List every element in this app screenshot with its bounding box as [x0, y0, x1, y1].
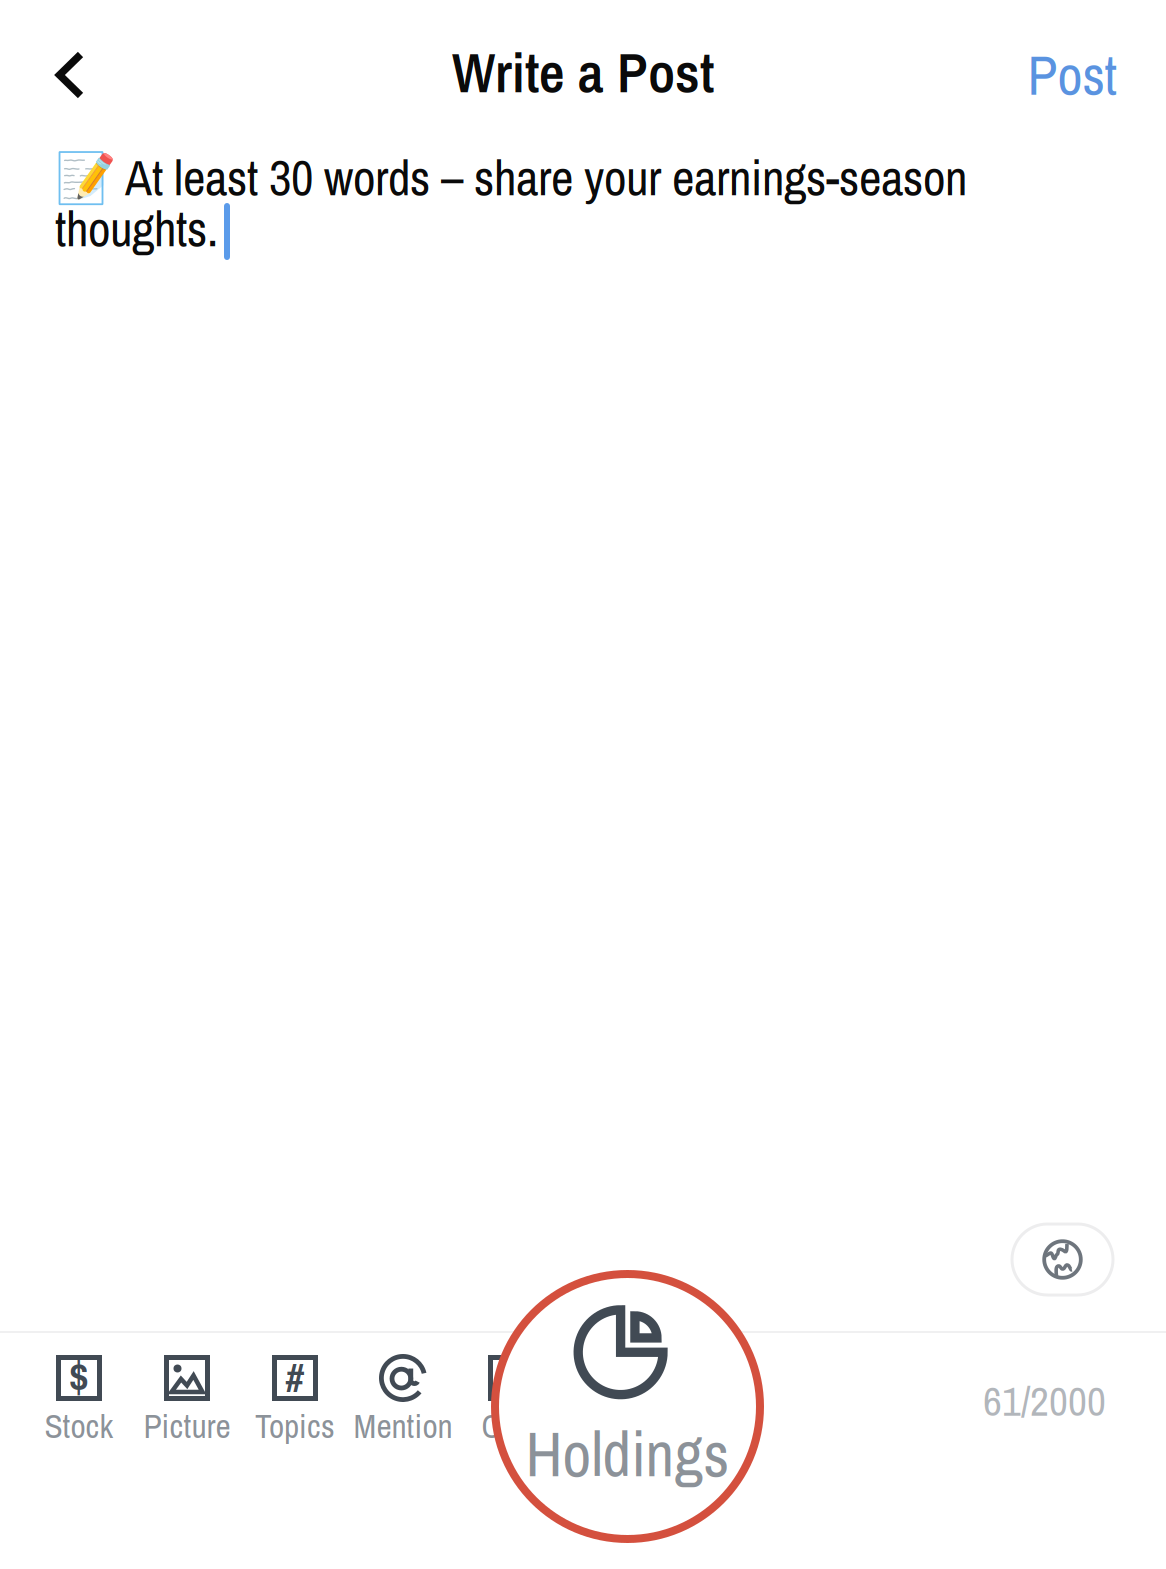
- button[interactable]: Picture: [133, 1355, 241, 1455]
- staticText: Holdings: [525, 1411, 729, 1496]
- button[interactable]: #: [241, 1355, 349, 1455]
- button[interactable]: Mention: [349, 1355, 457, 1455]
- staticText: 61/2000: [983, 1373, 1106, 1429]
- staticText: $: [500, 1346, 521, 1408]
- staticText: Post: [1027, 38, 1116, 112]
- staticText: Write a Post: [452, 34, 714, 110]
- staticText: Stock: [44, 1404, 113, 1448]
- staticText: #: [285, 1349, 304, 1405]
- staticText: Picture: [143, 1404, 230, 1448]
- button[interactable]: $: [25, 1355, 133, 1455]
- staticText: 📝 At least 30 words – share your earning…: [55, 144, 967, 211]
- staticText: $: [68, 1346, 89, 1408]
- button[interactable]: $: [457, 1355, 565, 1455]
- button[interactable]: Audience: Public: [1012, 1224, 1113, 1295]
- staticText: Mention: [353, 1404, 452, 1448]
- button[interactable]: Back: [14, 27, 126, 123]
- staticText: Topics: [255, 1404, 335, 1448]
- staticText: Card: [481, 1404, 540, 1448]
- button[interactable]: Post: [997, 27, 1147, 123]
- staticText: thoughts.: [55, 195, 218, 262]
